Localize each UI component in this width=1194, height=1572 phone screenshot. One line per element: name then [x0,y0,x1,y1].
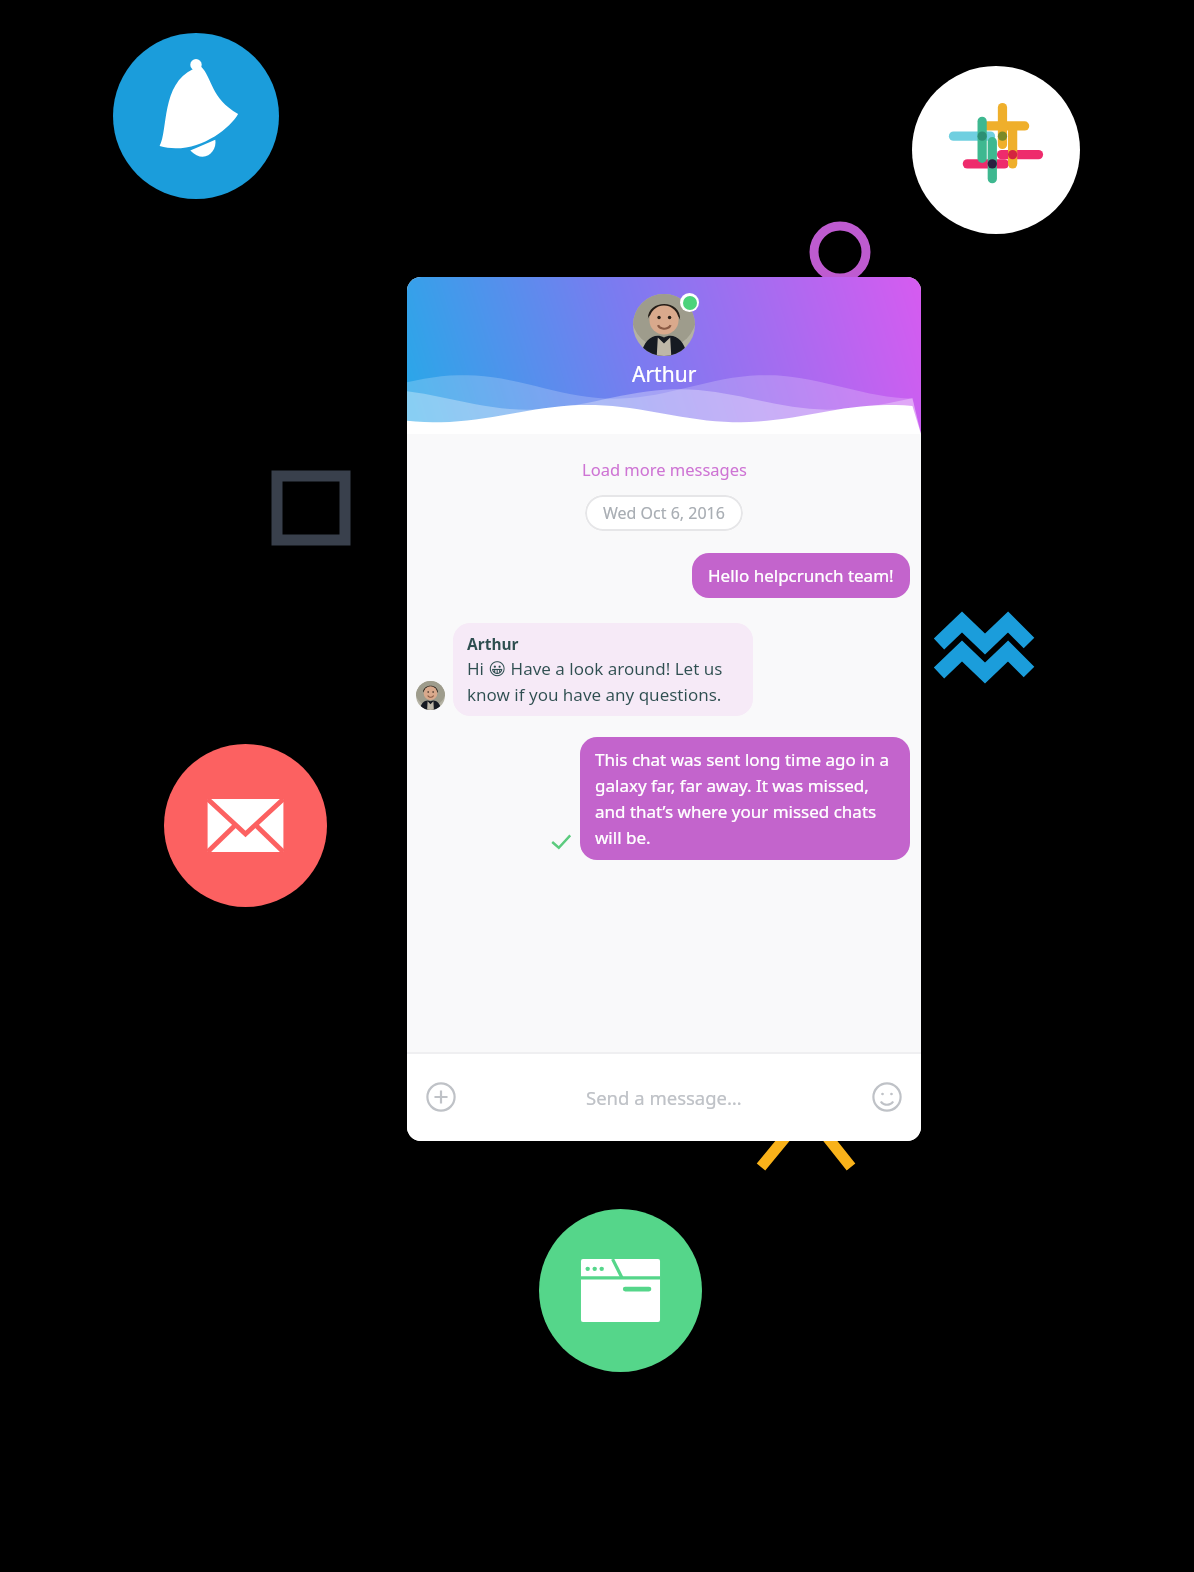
button[interactable]: Slack [912,66,1080,234]
staticText: Send a message… [586,1085,742,1110]
button[interactable]: Notifications [113,33,279,199]
button[interactable]: Load more messages [407,458,921,480]
button[interactable]: Send a message… [458,1053,870,1141]
staticText: Load more messages [582,458,747,480]
button[interactable]: Email [164,744,327,907]
button[interactable]: Web messenger [539,1209,702,1372]
button[interactable]: Hello helpcrunch team! [692,553,910,598]
staticText: Hello helpcrunch team! [708,564,894,587]
staticText: Hi 😀 Have a look around! Let us know if … [467,657,739,706]
button[interactable]: Emoji [870,1080,904,1114]
button[interactable]: Arthur [453,623,753,716]
staticText: This chat was sent long time ago in a ga… [595,748,895,849]
staticText: Arthur [467,633,519,654]
staticText: Arthur [632,360,697,389]
button[interactable]: This chat was sent long time ago in a ga… [580,737,910,860]
staticText: Wed Oct 6, 2016 [603,502,725,524]
button[interactable]: Attach [424,1080,458,1114]
